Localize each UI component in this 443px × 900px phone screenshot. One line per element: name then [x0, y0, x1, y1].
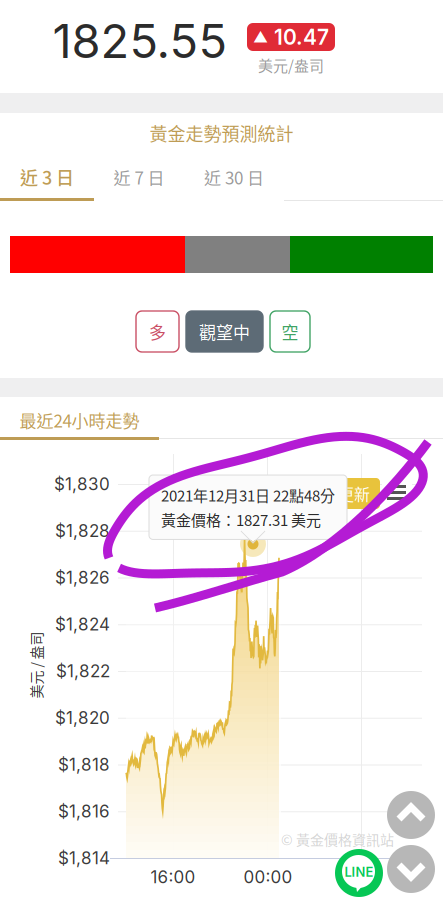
staticText: $1,830: [54, 474, 110, 494]
staticText: 多: [149, 319, 166, 344]
staticText: 空: [281, 319, 298, 344]
button[interactable]: 近 30 日: [184, 156, 284, 201]
staticText: $1,822: [56, 661, 110, 681]
button[interactable]: 近 7 日: [94, 156, 184, 201]
staticText: 近 30 日: [204, 165, 264, 189]
staticText: 美元 / 盎司: [2, 655, 69, 675]
staticText: $1,818: [58, 754, 110, 775]
staticText: 近 3 日: [20, 164, 74, 190]
staticText: © 黃金價格資訊站: [281, 829, 394, 849]
staticText: $1,820: [55, 707, 110, 728]
button[interactable]: 觀望中: [186, 311, 263, 352]
staticText: 最近24小時走勢: [19, 408, 139, 432]
staticText: 00:00: [243, 867, 292, 887]
staticText: $1,816: [58, 801, 110, 822]
button[interactable]: Scroll to top: [387, 791, 435, 839]
staticText: 1825.55: [52, 13, 227, 69]
staticText: 更新: [338, 482, 370, 505]
staticText: LINE: [344, 864, 373, 880]
staticText: $1,814: [58, 848, 110, 868]
button[interactable]: Share on LINE: [335, 849, 383, 897]
button[interactable]: Menu: [382, 479, 412, 507]
button[interactable]: 更新: [328, 478, 380, 509]
staticText: 黃金走勢預測統計: [149, 120, 293, 146]
button[interactable]: 空: [270, 311, 310, 352]
button[interactable]: Scroll to bottom: [387, 845, 435, 893]
staticText: 觀望中: [199, 319, 250, 344]
staticText: ▲: [253, 28, 268, 46]
staticText: 黃金價格：1827.31 美元: [161, 509, 321, 530]
button[interactable]: 近 3 日: [0, 156, 94, 201]
button[interactable]: 多: [136, 311, 179, 352]
staticText: $1,826: [55, 567, 110, 588]
staticText: $1,828: [55, 520, 110, 541]
staticText: 10.47: [274, 24, 329, 50]
staticText: $1,824: [55, 614, 110, 635]
staticText: 2021年12月31日 22點48分: [161, 484, 335, 506]
staticText: 美元/盎司: [258, 54, 324, 76]
staticText: 近 7 日: [113, 165, 164, 189]
staticText: 16:00: [150, 867, 195, 887]
